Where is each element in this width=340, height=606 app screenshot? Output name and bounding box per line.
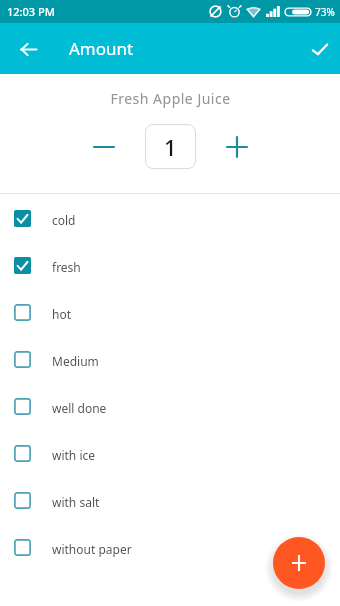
button[interactable]: Confirm bbox=[304, 33, 336, 65]
staticText: 12:03 PM bbox=[7, 4, 55, 19]
staticText: well done bbox=[52, 400, 107, 416]
staticText: hot bbox=[52, 306, 72, 322]
button[interactable]: Add bbox=[273, 537, 325, 589]
staticText: without paper bbox=[52, 541, 132, 557]
staticText: 1 bbox=[164, 132, 177, 162]
button[interactable]: Back bbox=[12, 33, 44, 65]
staticText: Medium bbox=[52, 353, 99, 369]
staticText: Amount bbox=[69, 37, 134, 60]
button[interactable]: Decrease bbox=[86, 129, 122, 165]
staticText: fresh bbox=[52, 259, 81, 275]
button[interactable]: Medium bbox=[0, 336, 340, 383]
staticText: with salt bbox=[52, 494, 100, 510]
button[interactable]: Increase bbox=[219, 129, 255, 165]
button[interactable]: well done bbox=[0, 383, 340, 430]
staticText: Fresh Apple Juice bbox=[110, 89, 231, 108]
staticText: cold bbox=[52, 212, 76, 228]
button[interactable]: fresh bbox=[0, 242, 340, 289]
staticText: with ice bbox=[52, 447, 96, 463]
staticText: 73% bbox=[315, 5, 335, 19]
button[interactable]: 1 bbox=[145, 124, 196, 169]
button[interactable]: without paper bbox=[0, 524, 340, 571]
button[interactable]: hot bbox=[0, 289, 340, 336]
button[interactable]: with ice bbox=[0, 430, 340, 477]
button[interactable]: with salt bbox=[0, 477, 340, 524]
button[interactable]: cold bbox=[0, 195, 340, 242]
